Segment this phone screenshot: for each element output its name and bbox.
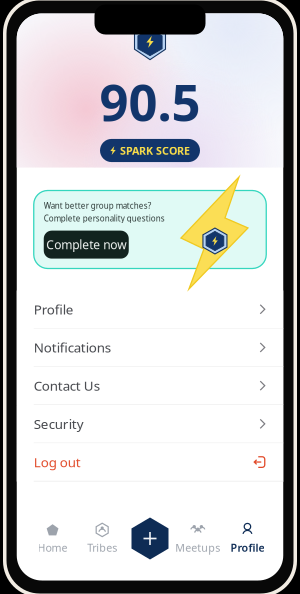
staticText: Tribes [87,540,117,555]
staticText: Complete now [46,237,126,253]
button[interactable]: Profile [223,522,272,555]
staticText: Notifications [34,339,111,356]
button[interactable]: Contact Us [17,367,283,405]
button[interactable]: Complete now [44,231,129,259]
staticText: Complete personality questions [44,213,165,224]
staticText: Home [38,540,68,555]
staticText: Contact Us [34,377,100,394]
staticText: Want better group matches? [44,200,151,211]
button[interactable]: Security [17,405,283,443]
staticText: Security [34,415,84,433]
button[interactable]: Home [28,522,77,555]
button[interactable]: Tribes [77,522,127,555]
staticText: Profile [34,300,74,318]
staticText: SPARK SCORE [120,143,190,158]
staticText: Meetups [175,540,220,555]
button[interactable]: Profile [17,290,283,329]
button[interactable]: Meetups [173,522,223,555]
button[interactable]: Log out [17,443,283,481]
staticText: Profile [230,540,264,555]
button[interactable]: Notifications [17,329,283,367]
staticText: 90.5 [99,68,200,135]
staticText: Log out [34,453,81,471]
